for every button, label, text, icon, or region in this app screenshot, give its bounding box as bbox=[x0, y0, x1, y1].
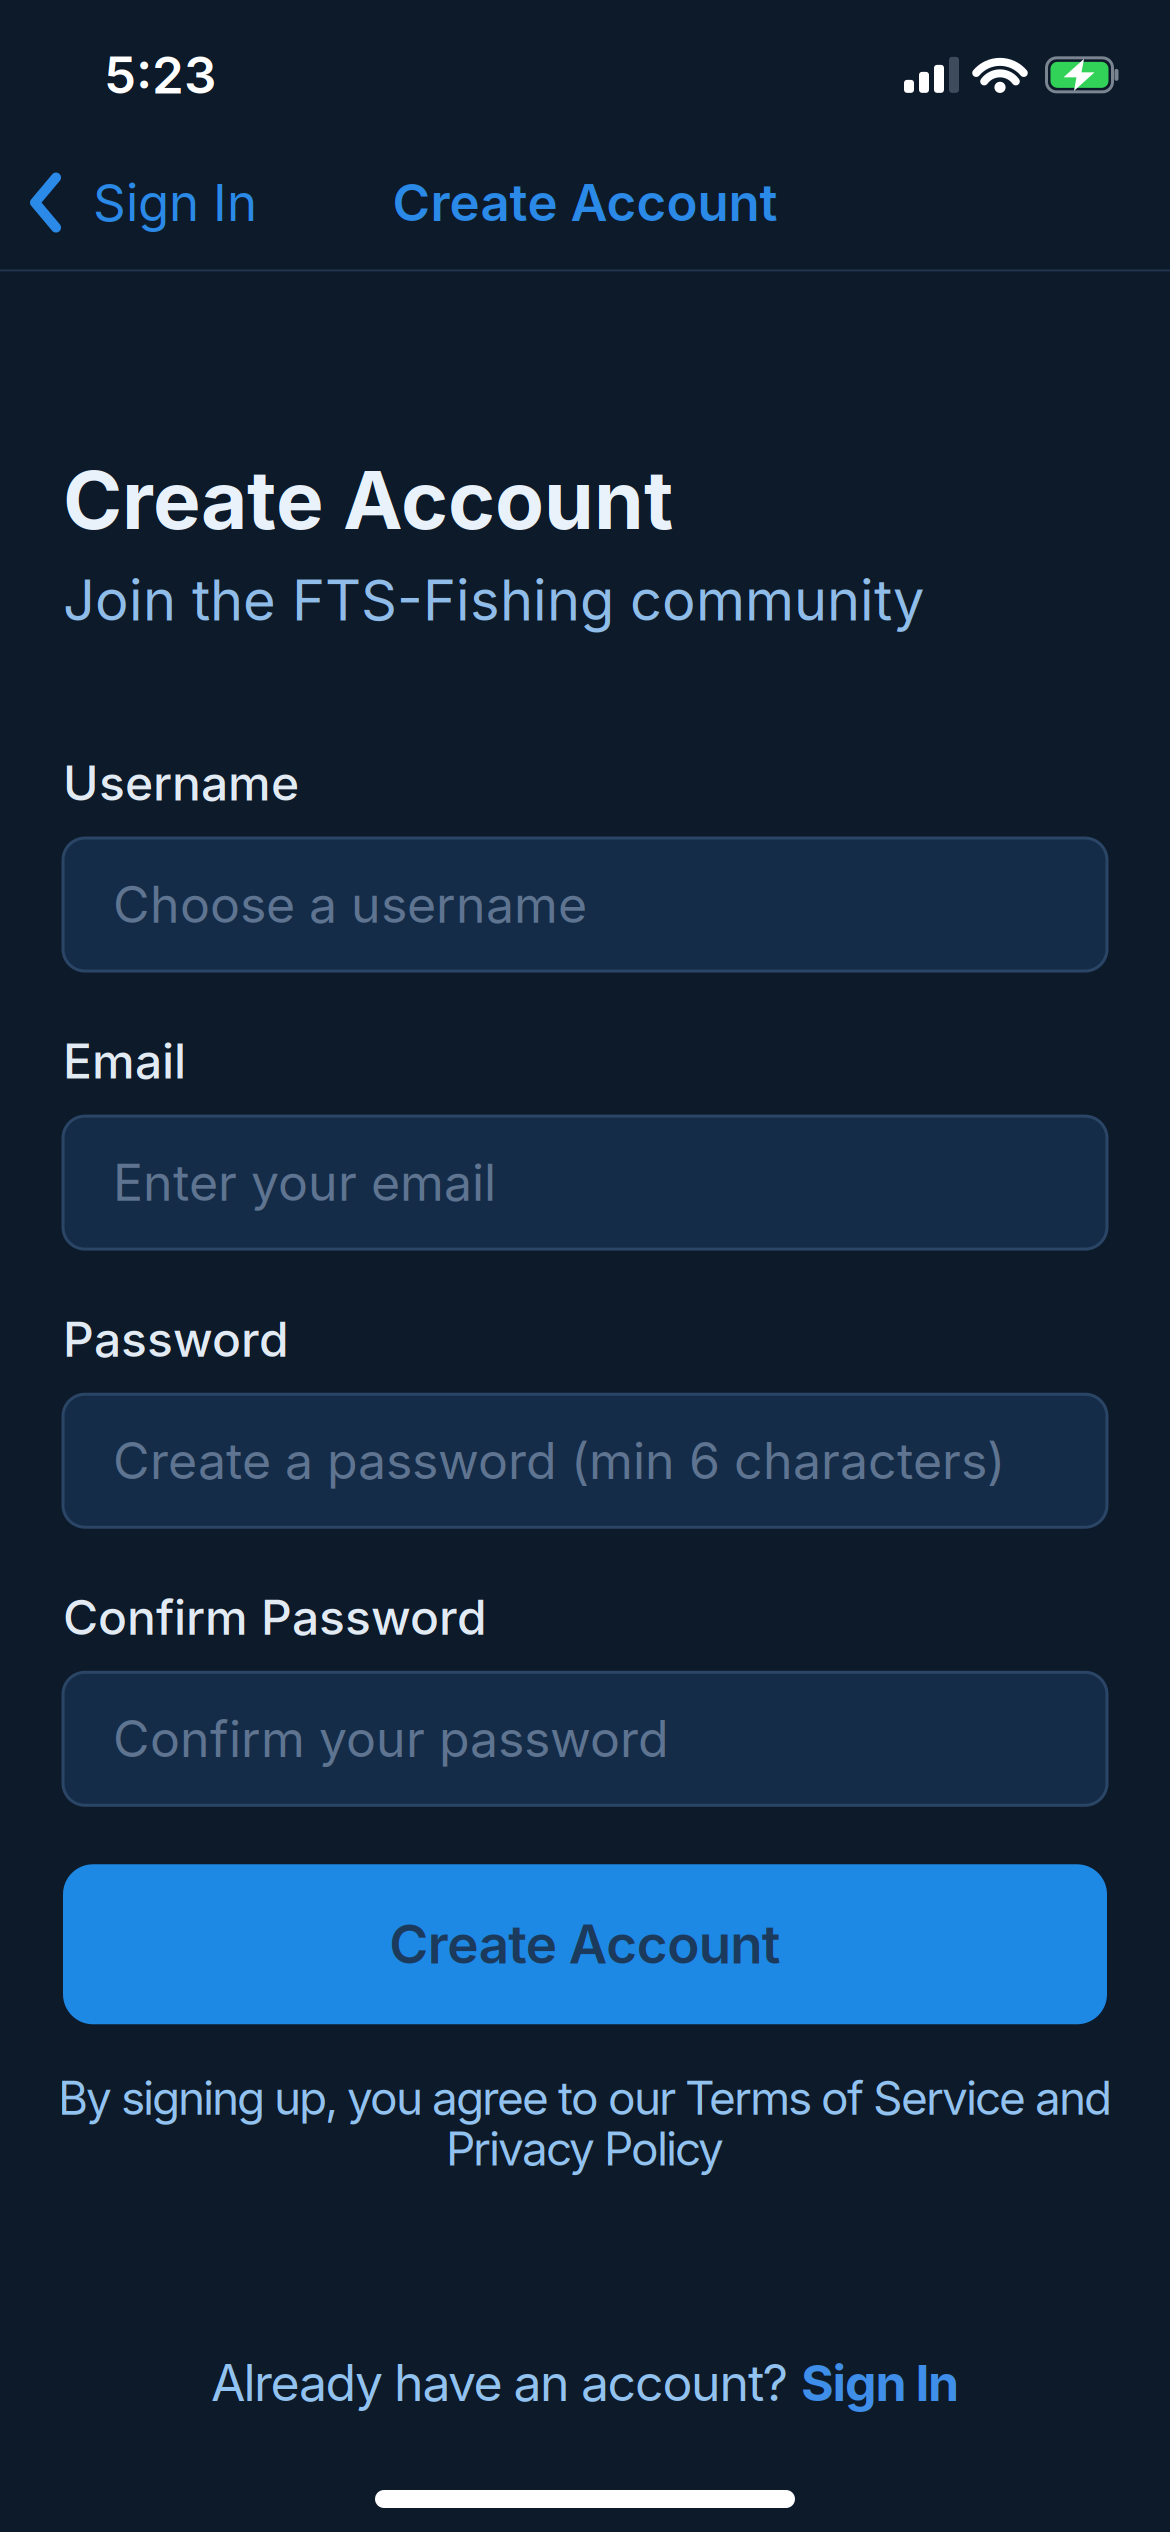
button[interactable]: Choose a username bbox=[63, 838, 1107, 971]
staticText: Username bbox=[63, 754, 299, 812]
staticText: Confirm your password bbox=[113, 1708, 669, 1769]
staticText: Already have an account? bbox=[211, 2352, 801, 2413]
staticText: Enter your email bbox=[113, 1152, 496, 1213]
staticText: Create Account bbox=[392, 172, 777, 233]
staticText: Confirm Password bbox=[63, 1588, 487, 1646]
staticText: Create a password (min 6 characters) bbox=[113, 1430, 1005, 1491]
button[interactable]: Sign In bbox=[801, 2352, 959, 2413]
staticText: Privacy Policy bbox=[446, 2121, 724, 2177]
staticText: Email bbox=[63, 1032, 186, 1090]
staticText: 5:23 bbox=[104, 44, 216, 106]
button[interactable]: Back bbox=[30, 172, 257, 233]
button[interactable]: Create a password (min 6 characters) bbox=[63, 1394, 1107, 1527]
staticText: Password bbox=[63, 1310, 289, 1368]
staticText: Choose a username bbox=[113, 874, 587, 935]
button[interactable]: Enter your email bbox=[63, 1116, 1107, 1249]
button[interactable]: Confirm your password bbox=[63, 1672, 1107, 1805]
staticText: Sign In bbox=[93, 172, 257, 233]
staticText: Join the FTS-Fishing community bbox=[63, 566, 924, 634]
staticText: Create Account bbox=[63, 451, 673, 548]
staticText: Sign In bbox=[801, 2352, 959, 2413]
button[interactable]: Create Account bbox=[63, 1864, 1107, 2024]
staticText: By signing up, you agree to our Terms of… bbox=[58, 2070, 1112, 2126]
staticText: Create Account bbox=[389, 1912, 781, 1976]
